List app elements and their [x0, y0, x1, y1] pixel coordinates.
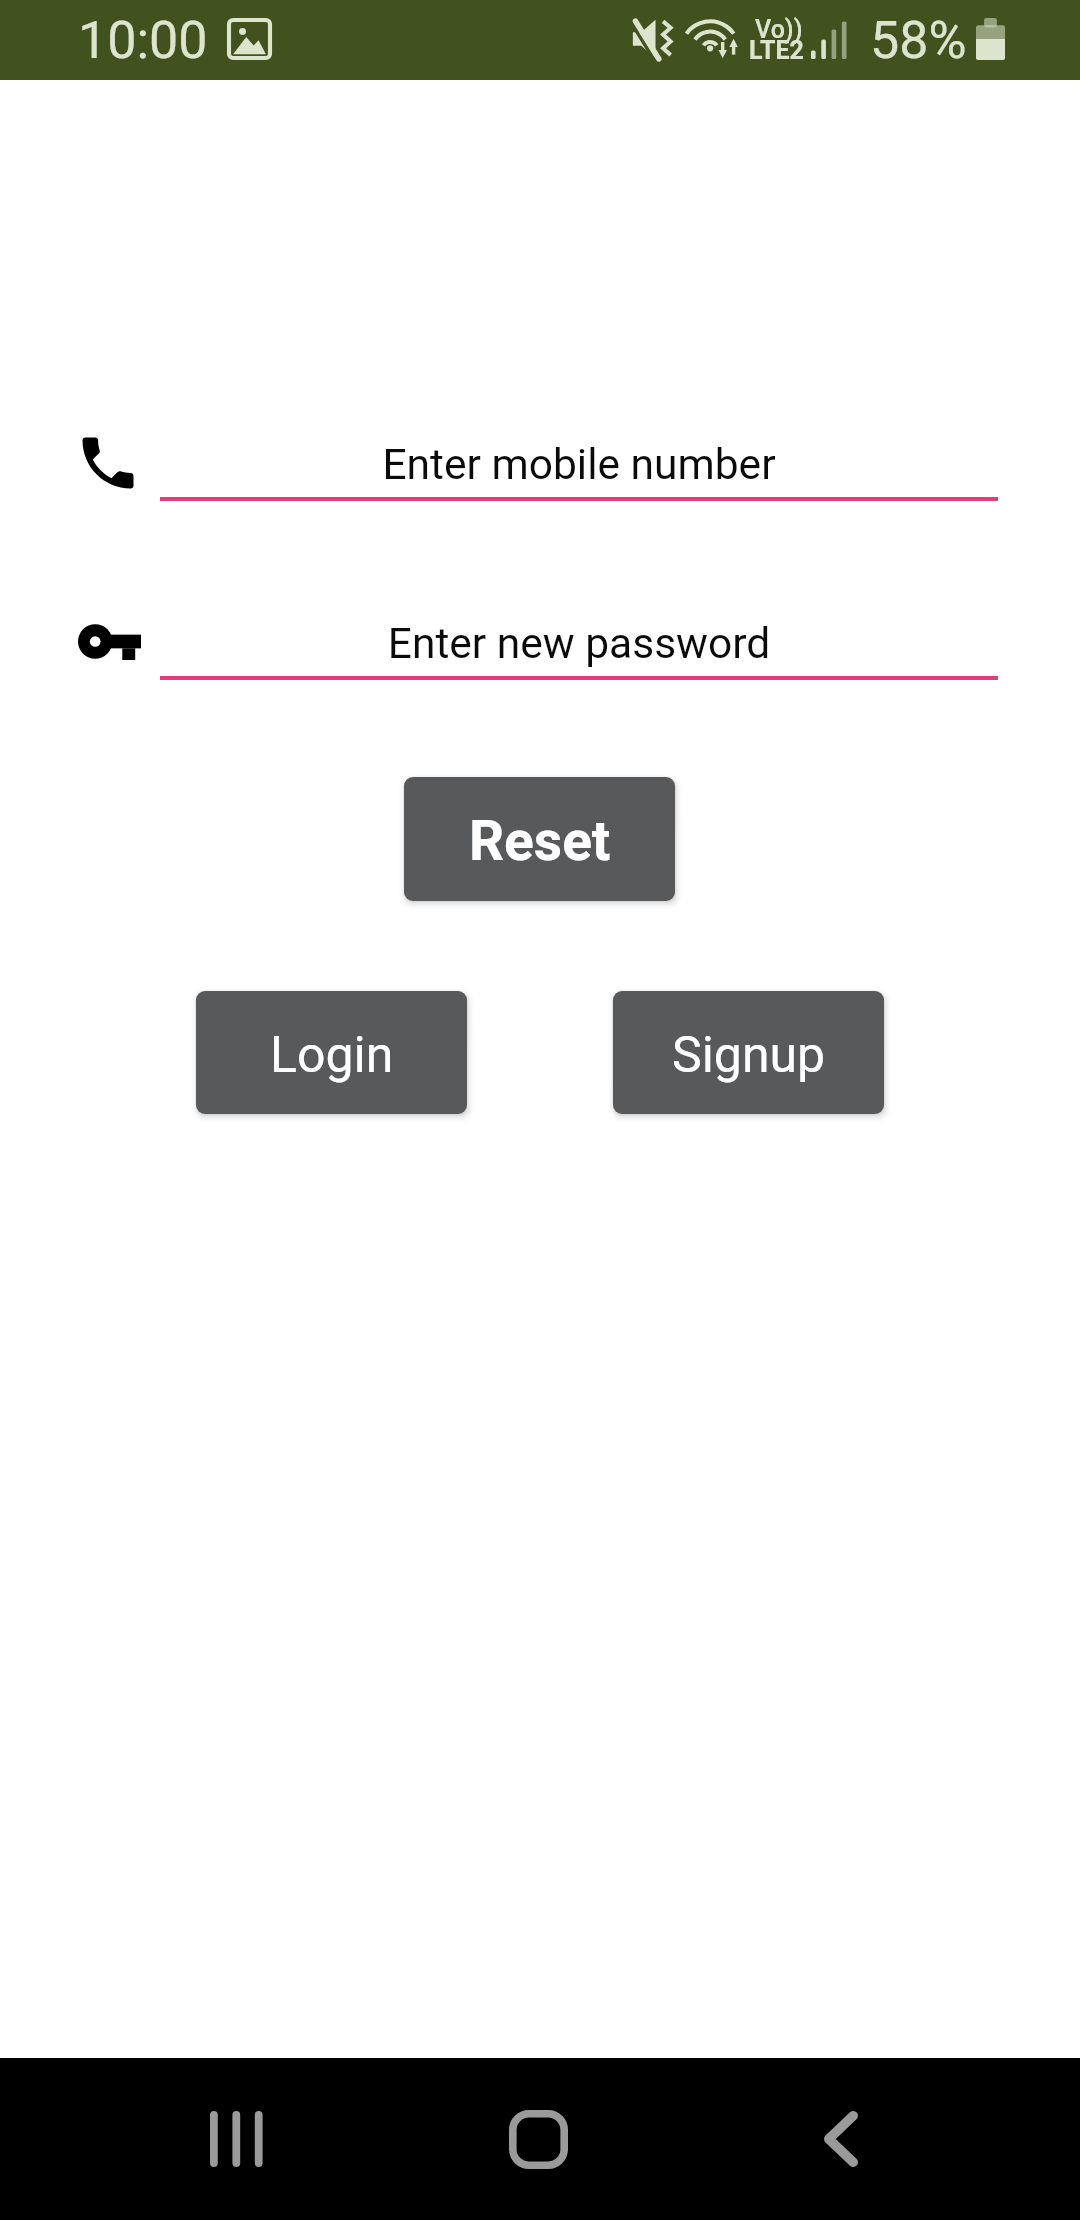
button[interactable]: Recent apps	[150, 2058, 323, 2220]
staticText: 58%	[870, 10, 967, 71]
staticText: Signup	[672, 1026, 826, 1085]
other: Phone number	[74, 429, 142, 497]
button[interactable]: Reset	[404, 777, 675, 901]
button[interactable]: Enter mobile number	[160, 418, 998, 503]
staticText: LTE2	[749, 36, 804, 65]
button[interactable]: Login	[196, 991, 467, 1114]
staticText: Reset	[469, 809, 611, 873]
button[interactable]: Enter new password	[160, 597, 998, 682]
staticText: Vo))	[755, 15, 803, 44]
staticText: Login	[270, 1026, 394, 1085]
button[interactable]: Signup	[613, 991, 884, 1114]
staticText: 10:00	[78, 10, 208, 71]
staticText: Enter mobile number	[160, 440, 998, 490]
other: Password	[78, 623, 141, 660]
button[interactable]: Home	[452, 2058, 625, 2220]
button[interactable]: Back	[754, 2058, 927, 2220]
staticText: Enter new password	[160, 619, 998, 669]
